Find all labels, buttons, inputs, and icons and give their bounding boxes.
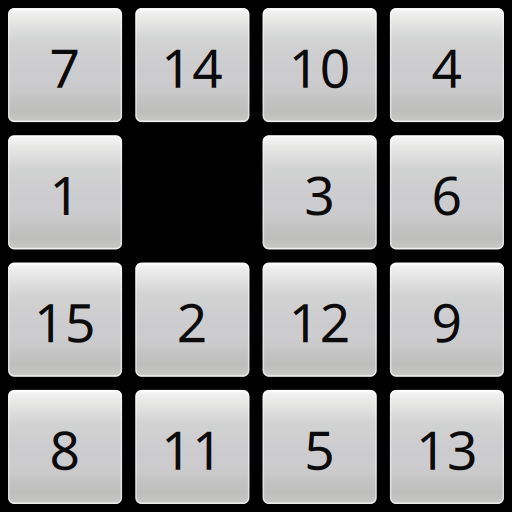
- button[interactable]: 15: [8, 263, 122, 377]
- button[interactable]: 11: [135, 390, 249, 504]
- staticText: 11: [161, 413, 223, 485]
- button[interactable]: 14: [135, 8, 249, 122]
- staticText: 7: [50, 31, 81, 103]
- staticText: 13: [416, 413, 478, 485]
- button[interactable]: 10: [263, 8, 377, 122]
- staticText: 1: [50, 158, 81, 231]
- staticText: 12: [289, 285, 351, 358]
- staticText: 15: [34, 285, 96, 358]
- staticText: 2: [177, 285, 208, 358]
- button[interactable]: 12: [263, 263, 377, 377]
- staticText: 6: [431, 158, 462, 231]
- staticText: 14: [161, 31, 223, 103]
- button[interactable]: 7: [8, 8, 122, 122]
- staticText: 3: [304, 158, 335, 231]
- button[interactable]: 13: [390, 390, 504, 504]
- button[interactable]: 2: [135, 263, 249, 377]
- button[interactable]: 3: [263, 135, 377, 249]
- button[interactable]: 5: [263, 390, 377, 504]
- button[interactable]: 1: [8, 135, 122, 249]
- staticText: 4: [431, 31, 462, 103]
- staticText: 5: [304, 413, 335, 485]
- staticText: 9: [431, 285, 462, 358]
- staticText: 8: [50, 413, 81, 485]
- button[interactable]: 6: [390, 135, 504, 249]
- button[interactable]: 8: [8, 390, 122, 504]
- button[interactable]: 9: [390, 263, 504, 377]
- staticText: 10: [289, 31, 351, 103]
- button[interactable]: 4: [390, 8, 504, 122]
